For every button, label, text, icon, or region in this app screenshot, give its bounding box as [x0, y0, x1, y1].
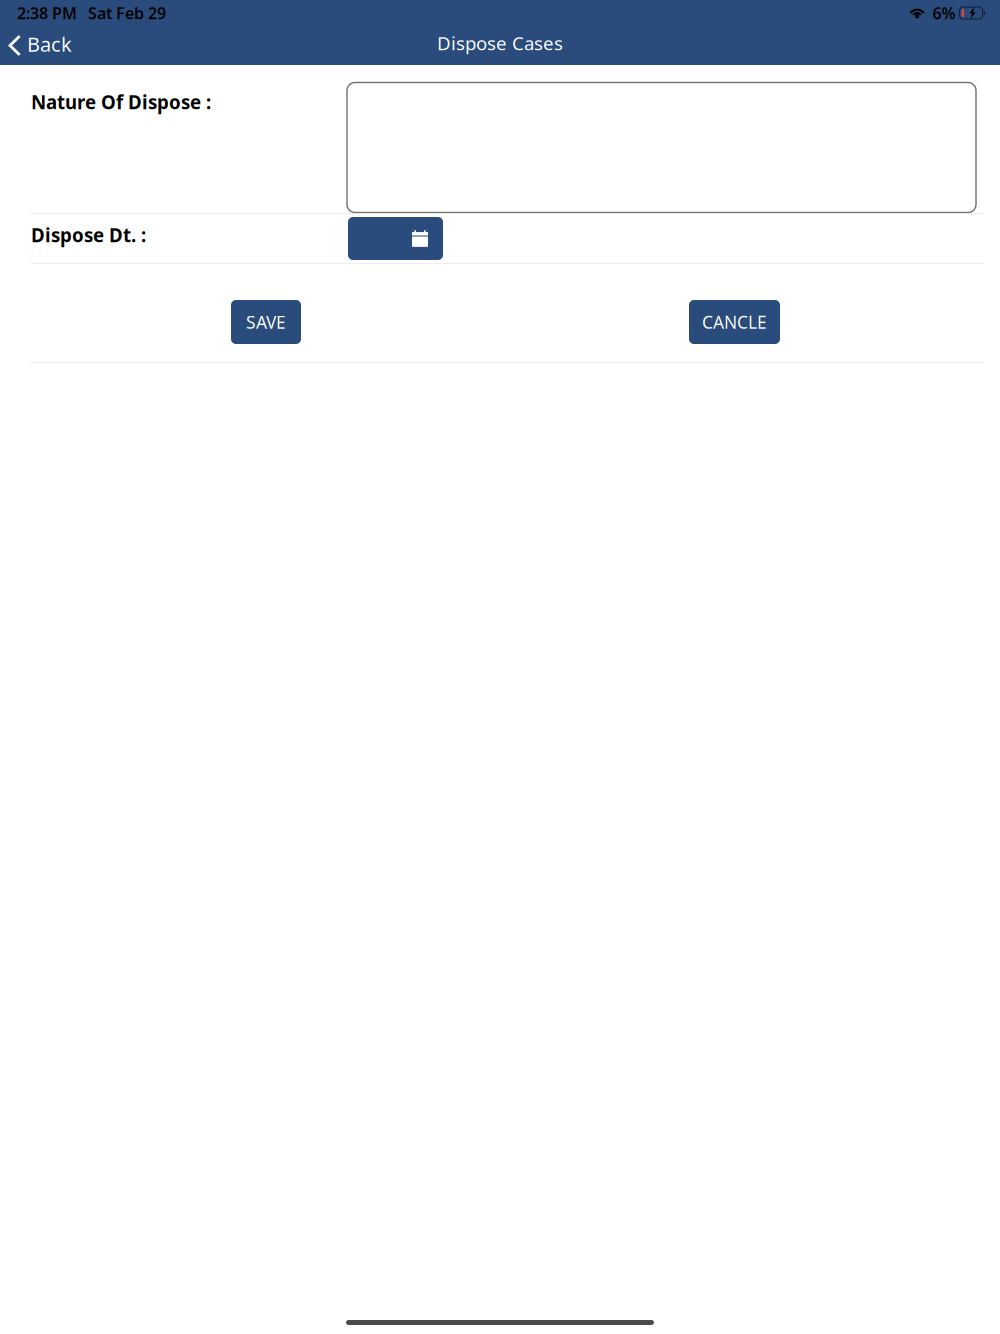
button[interactable]: SAVE [231, 300, 301, 344]
staticText: Nature Of Dispose : [31, 89, 211, 114]
staticText: Back [27, 31, 72, 57]
staticText: Sat Feb 29 [88, 2, 166, 24]
button[interactable]: Choose dispose date [348, 217, 443, 260]
staticText: 6% [933, 2, 956, 24]
button[interactable]: Nature of dispose text field [347, 65, 976, 212]
staticText: Dispose Dt. : [31, 223, 146, 247]
button[interactable]: CANCLE [689, 300, 780, 344]
staticText: 2:38 PM [17, 2, 77, 24]
button[interactable]: Back [0, 26, 82, 65]
staticText: SAVE [246, 310, 286, 333]
staticText: CANCLE [702, 310, 767, 333]
staticText: Dispose Cases [437, 31, 563, 55]
